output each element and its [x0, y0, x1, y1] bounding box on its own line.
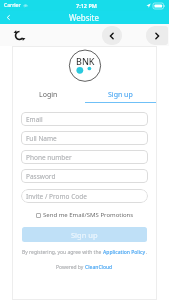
button[interactable]: Page back: [102, 26, 122, 45]
staticText: Sign up: [71, 230, 98, 240]
button[interactable]: Invite / Promo Code: [21, 189, 148, 203]
staticText: 7:12 PM: [76, 2, 97, 9]
button[interactable]: Login: [12, 88, 84, 102]
staticText: Login: [39, 90, 58, 100]
button[interactable]: Email: [21, 112, 148, 126]
button[interactable]: Phone number: [21, 150, 148, 164]
staticText: BNK: [76, 55, 95, 67]
staticText: Carrier: [4, 2, 21, 9]
staticText: By registering, you agree with the: [22, 249, 103, 256]
button[interactable]: CleanCloud: [85, 264, 113, 271]
staticText: Application Policy: [103, 249, 146, 256]
staticText: .: [146, 249, 148, 256]
staticText: Sign up: [108, 90, 133, 100]
button[interactable]: Sign up: [22, 227, 147, 242]
button[interactable]: Page forward: [146, 26, 168, 45]
button[interactable]: Application Policy: [103, 249, 146, 256]
button[interactable]: Refresh: [11, 27, 27, 43]
staticText: Full Name: [26, 134, 57, 143]
button[interactable]: Full Name: [21, 131, 148, 145]
button[interactable]: Sign up: [84, 88, 157, 102]
staticText: Website: [69, 12, 100, 23]
staticText: Send me Email/SMS Promotions: [43, 211, 134, 219]
button[interactable]: Send me Email/SMS Promotions: [34, 209, 136, 221]
staticText: Email: [26, 115, 43, 124]
staticText: Invite / Promo Code: [26, 192, 87, 201]
staticText: Password: [26, 172, 56, 181]
staticText: Phone number: [26, 153, 72, 162]
staticText: Powered by: [56, 264, 85, 271]
staticText: CleanCloud: [85, 264, 113, 271]
button[interactable]: Back: [3, 12, 14, 23]
button[interactable]: Password: [21, 169, 148, 183]
